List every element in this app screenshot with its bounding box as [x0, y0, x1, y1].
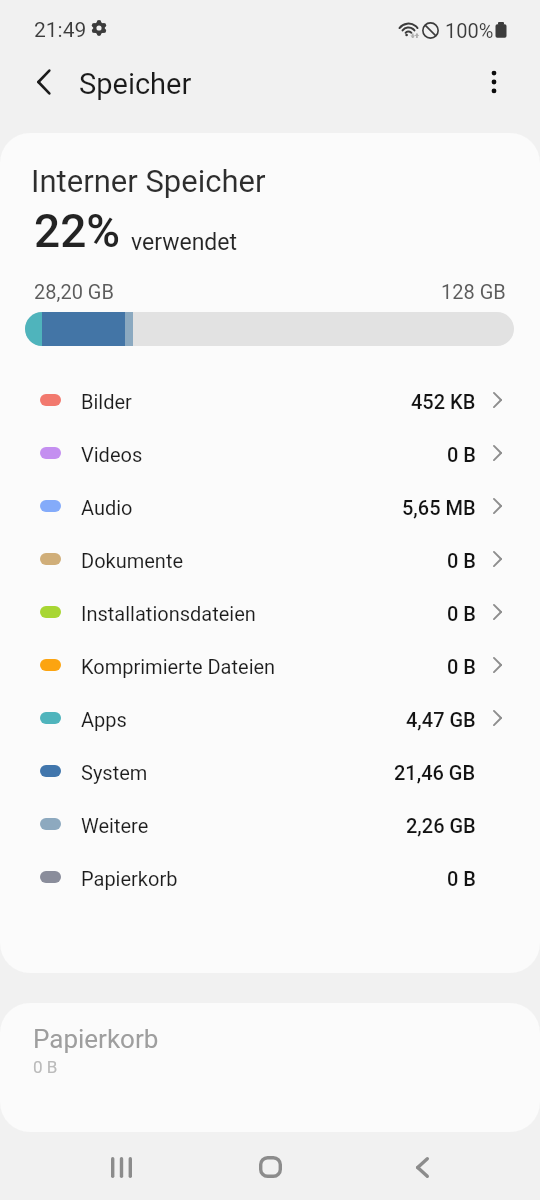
staticText: 21,46 GB: [394, 761, 476, 784]
staticText: 5,65 MB: [402, 496, 476, 519]
staticText: Speicher: [79, 67, 192, 101]
staticText: 452 KB: [411, 390, 476, 413]
button[interactable]: Bilder: [0, 375, 540, 428]
staticText: 2,26 GB: [406, 814, 476, 837]
button[interactable]: System: [0, 746, 540, 799]
button[interactable]: Papierkorb: [0, 1003, 540, 1132]
staticText: Videos: [81, 443, 143, 466]
button[interactable]: Back: [398, 1143, 446, 1191]
button[interactable]: Recent apps: [97, 1143, 145, 1191]
staticText: 0 B: [447, 602, 476, 625]
staticText: Papierkorb: [81, 867, 178, 890]
staticText: Weitere: [81, 814, 149, 837]
staticText: 0 B: [447, 655, 476, 678]
staticText: Apps: [81, 708, 127, 731]
staticText: 22%: [34, 204, 121, 258]
staticText: 4,47 GB: [406, 708, 476, 731]
button[interactable]: Installationsdateien: [0, 587, 540, 640]
staticText: Audio: [81, 496, 133, 519]
button[interactable]: Audio: [0, 481, 540, 534]
staticText: Papierkorb: [33, 1024, 159, 1054]
staticText: 0 B: [447, 443, 476, 466]
button[interactable]: Home: [246, 1143, 294, 1191]
staticText: 128 GB: [441, 280, 506, 303]
button[interactable]: Weitere: [0, 799, 540, 852]
staticText: Bilder: [81, 390, 132, 413]
staticText: 0 B: [447, 549, 476, 572]
button[interactable]: Dokumente: [0, 534, 540, 587]
staticText: System: [81, 761, 148, 784]
staticText: Interner Speicher: [31, 163, 266, 199]
button[interactable]: Videos: [0, 428, 540, 481]
button[interactable]: Back: [20, 58, 68, 106]
staticText: 100%: [445, 19, 494, 42]
staticText: Dokumente: [81, 549, 184, 572]
button[interactable]: Apps: [0, 693, 540, 746]
button[interactable]: Komprimierte Dateien: [0, 640, 540, 693]
staticText: 21:49: [34, 18, 87, 43]
staticText: verwendet: [131, 229, 238, 256]
staticText: 28,20 GB: [34, 280, 114, 303]
button[interactable]: More options: [470, 58, 518, 106]
staticText: 0 B: [33, 1057, 58, 1077]
button[interactable]: Papierkorb: [0, 852, 540, 905]
staticText: Installationsdateien: [81, 602, 256, 625]
staticText: 0 B: [447, 867, 476, 890]
staticText: Komprimierte Dateien: [81, 655, 276, 678]
